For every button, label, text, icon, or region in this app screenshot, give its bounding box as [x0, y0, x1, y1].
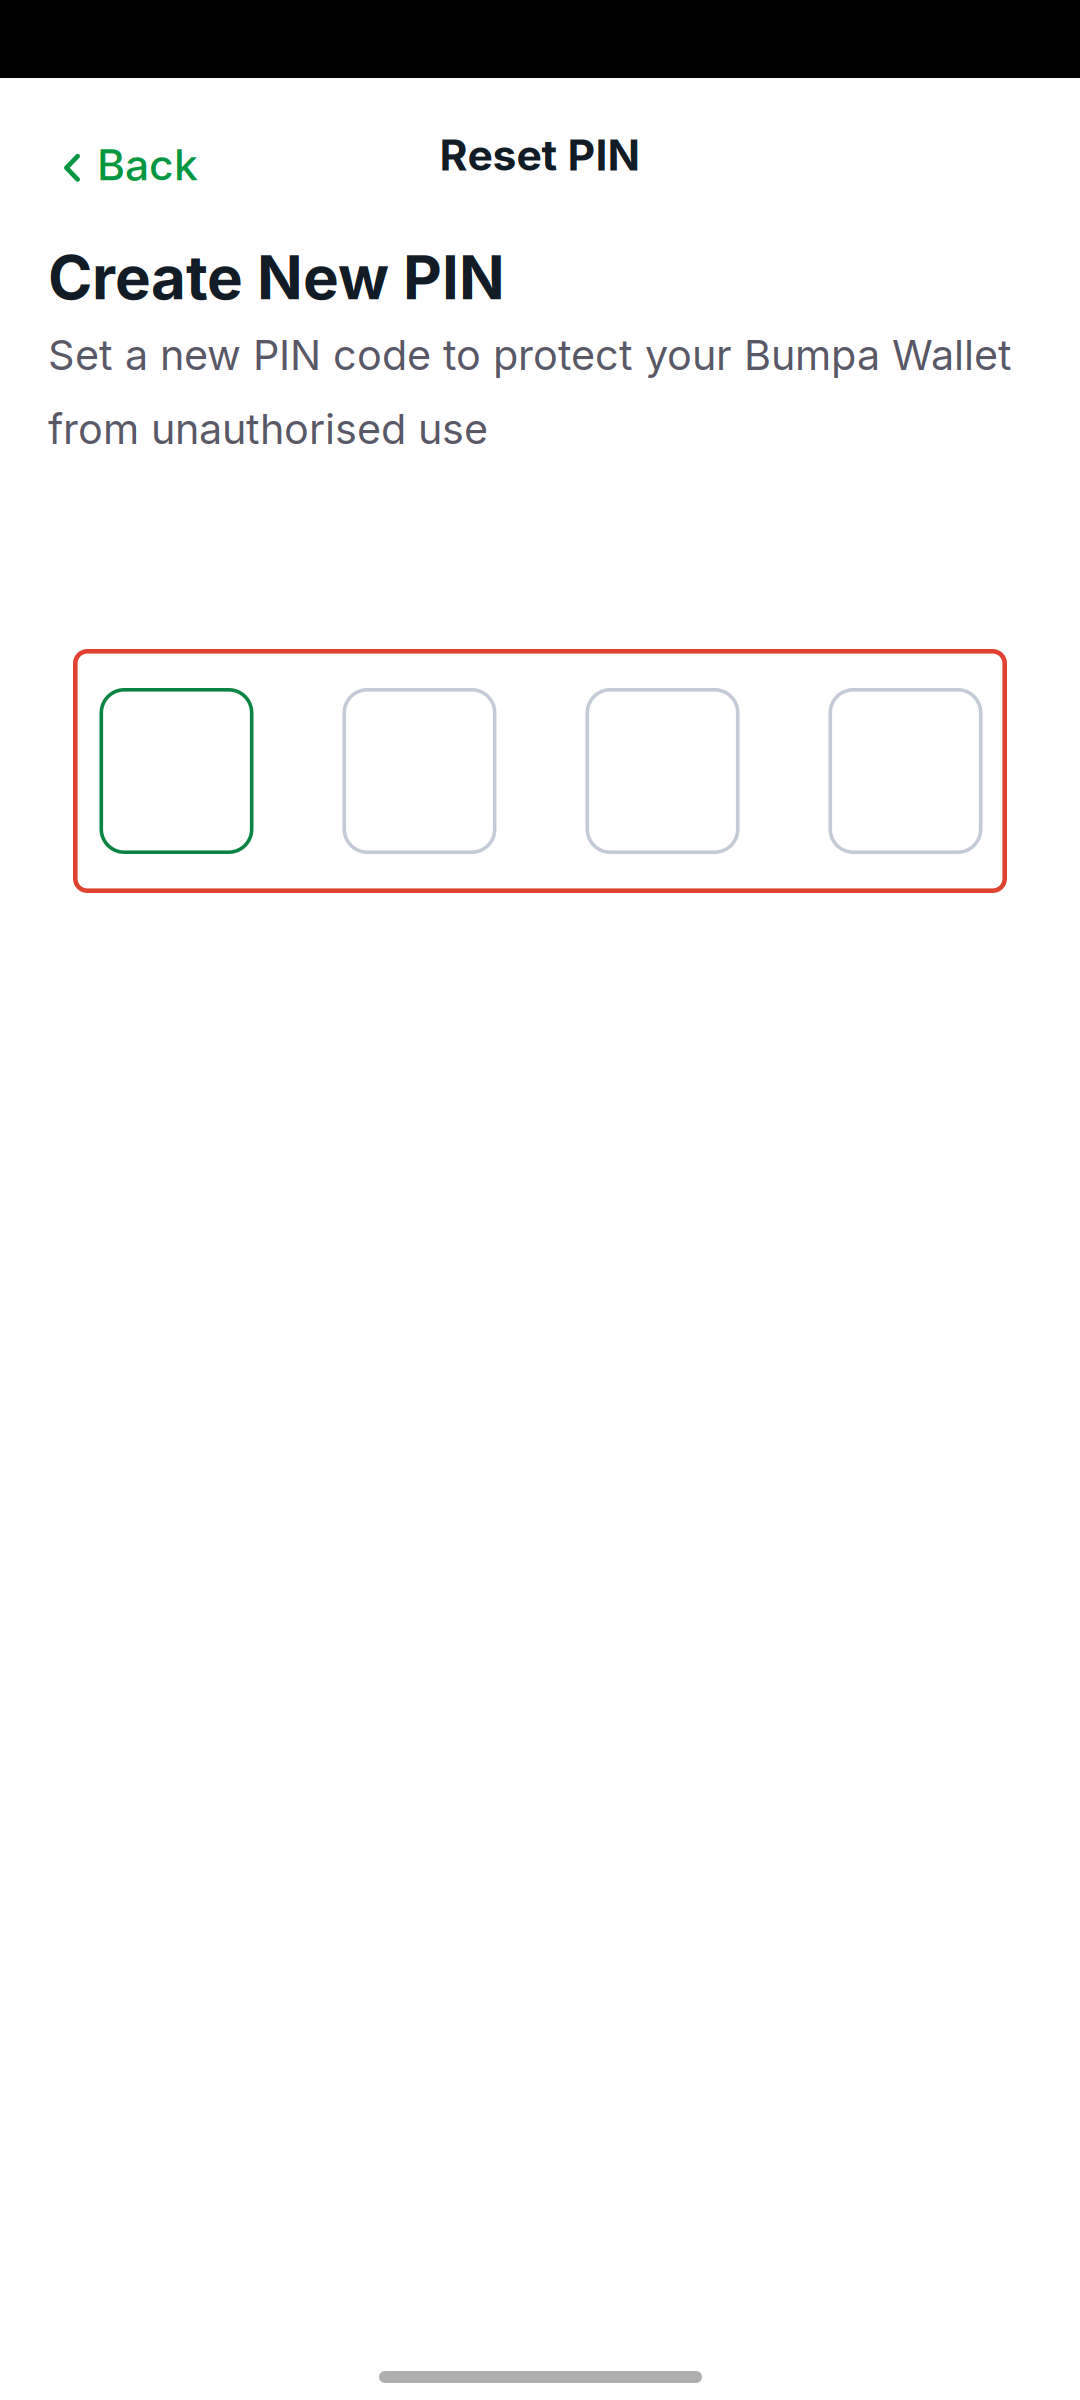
button[interactable]: PIN digit [828, 688, 982, 854]
staticText: Reset PIN [439, 129, 640, 181]
staticText: Set a new PIN code to protect your Bumpa… [48, 330, 1012, 454]
staticText: Back [97, 139, 198, 191]
button[interactable]: PIN digit [342, 688, 496, 854]
button[interactable]: PIN digit [585, 688, 739, 854]
staticText: Create New PIN [48, 241, 505, 314]
button[interactable]: Back [0, 121, 226, 209]
button[interactable]: PIN digit, active [99, 688, 253, 854]
